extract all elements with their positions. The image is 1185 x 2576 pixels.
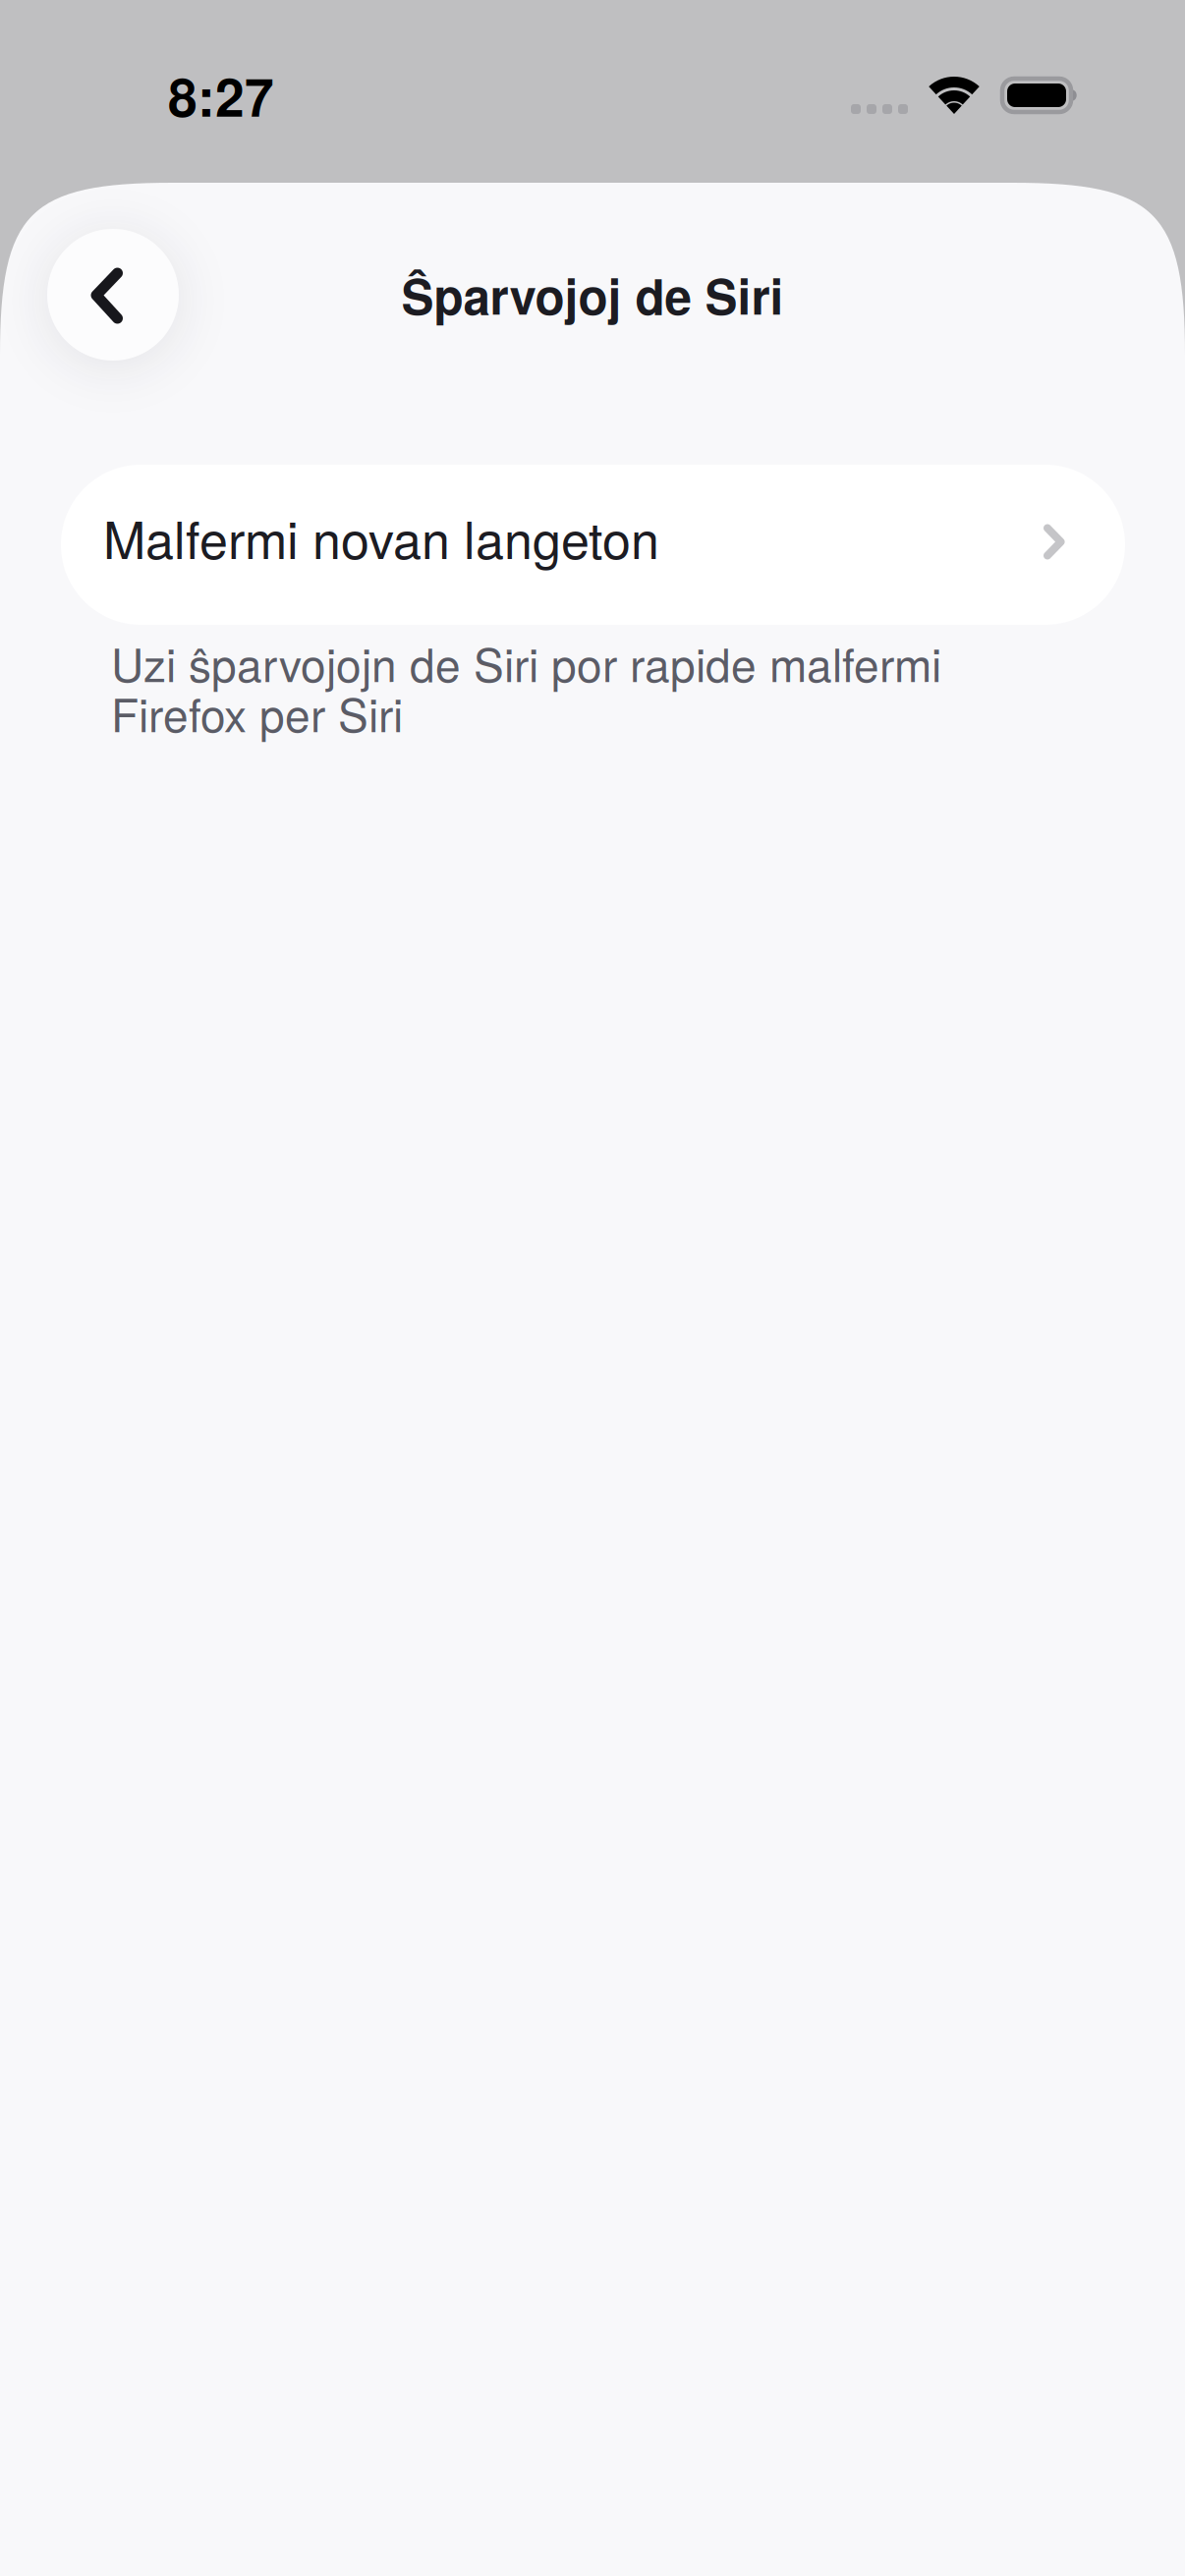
staticText: Firefox per Siri [111, 680, 403, 745]
staticText: 8:27 [168, 58, 274, 133]
staticText: Uzi ŝparvojojn de Siri por rapide malfer… [111, 630, 941, 695]
staticText: Ŝparvojoj de Siri [401, 260, 784, 329]
staticText: Malfermi novan langeton [103, 500, 659, 574]
button[interactable]: Malfermi novan langeton [61, 465, 1125, 625]
button[interactable]: Back [47, 229, 179, 361]
